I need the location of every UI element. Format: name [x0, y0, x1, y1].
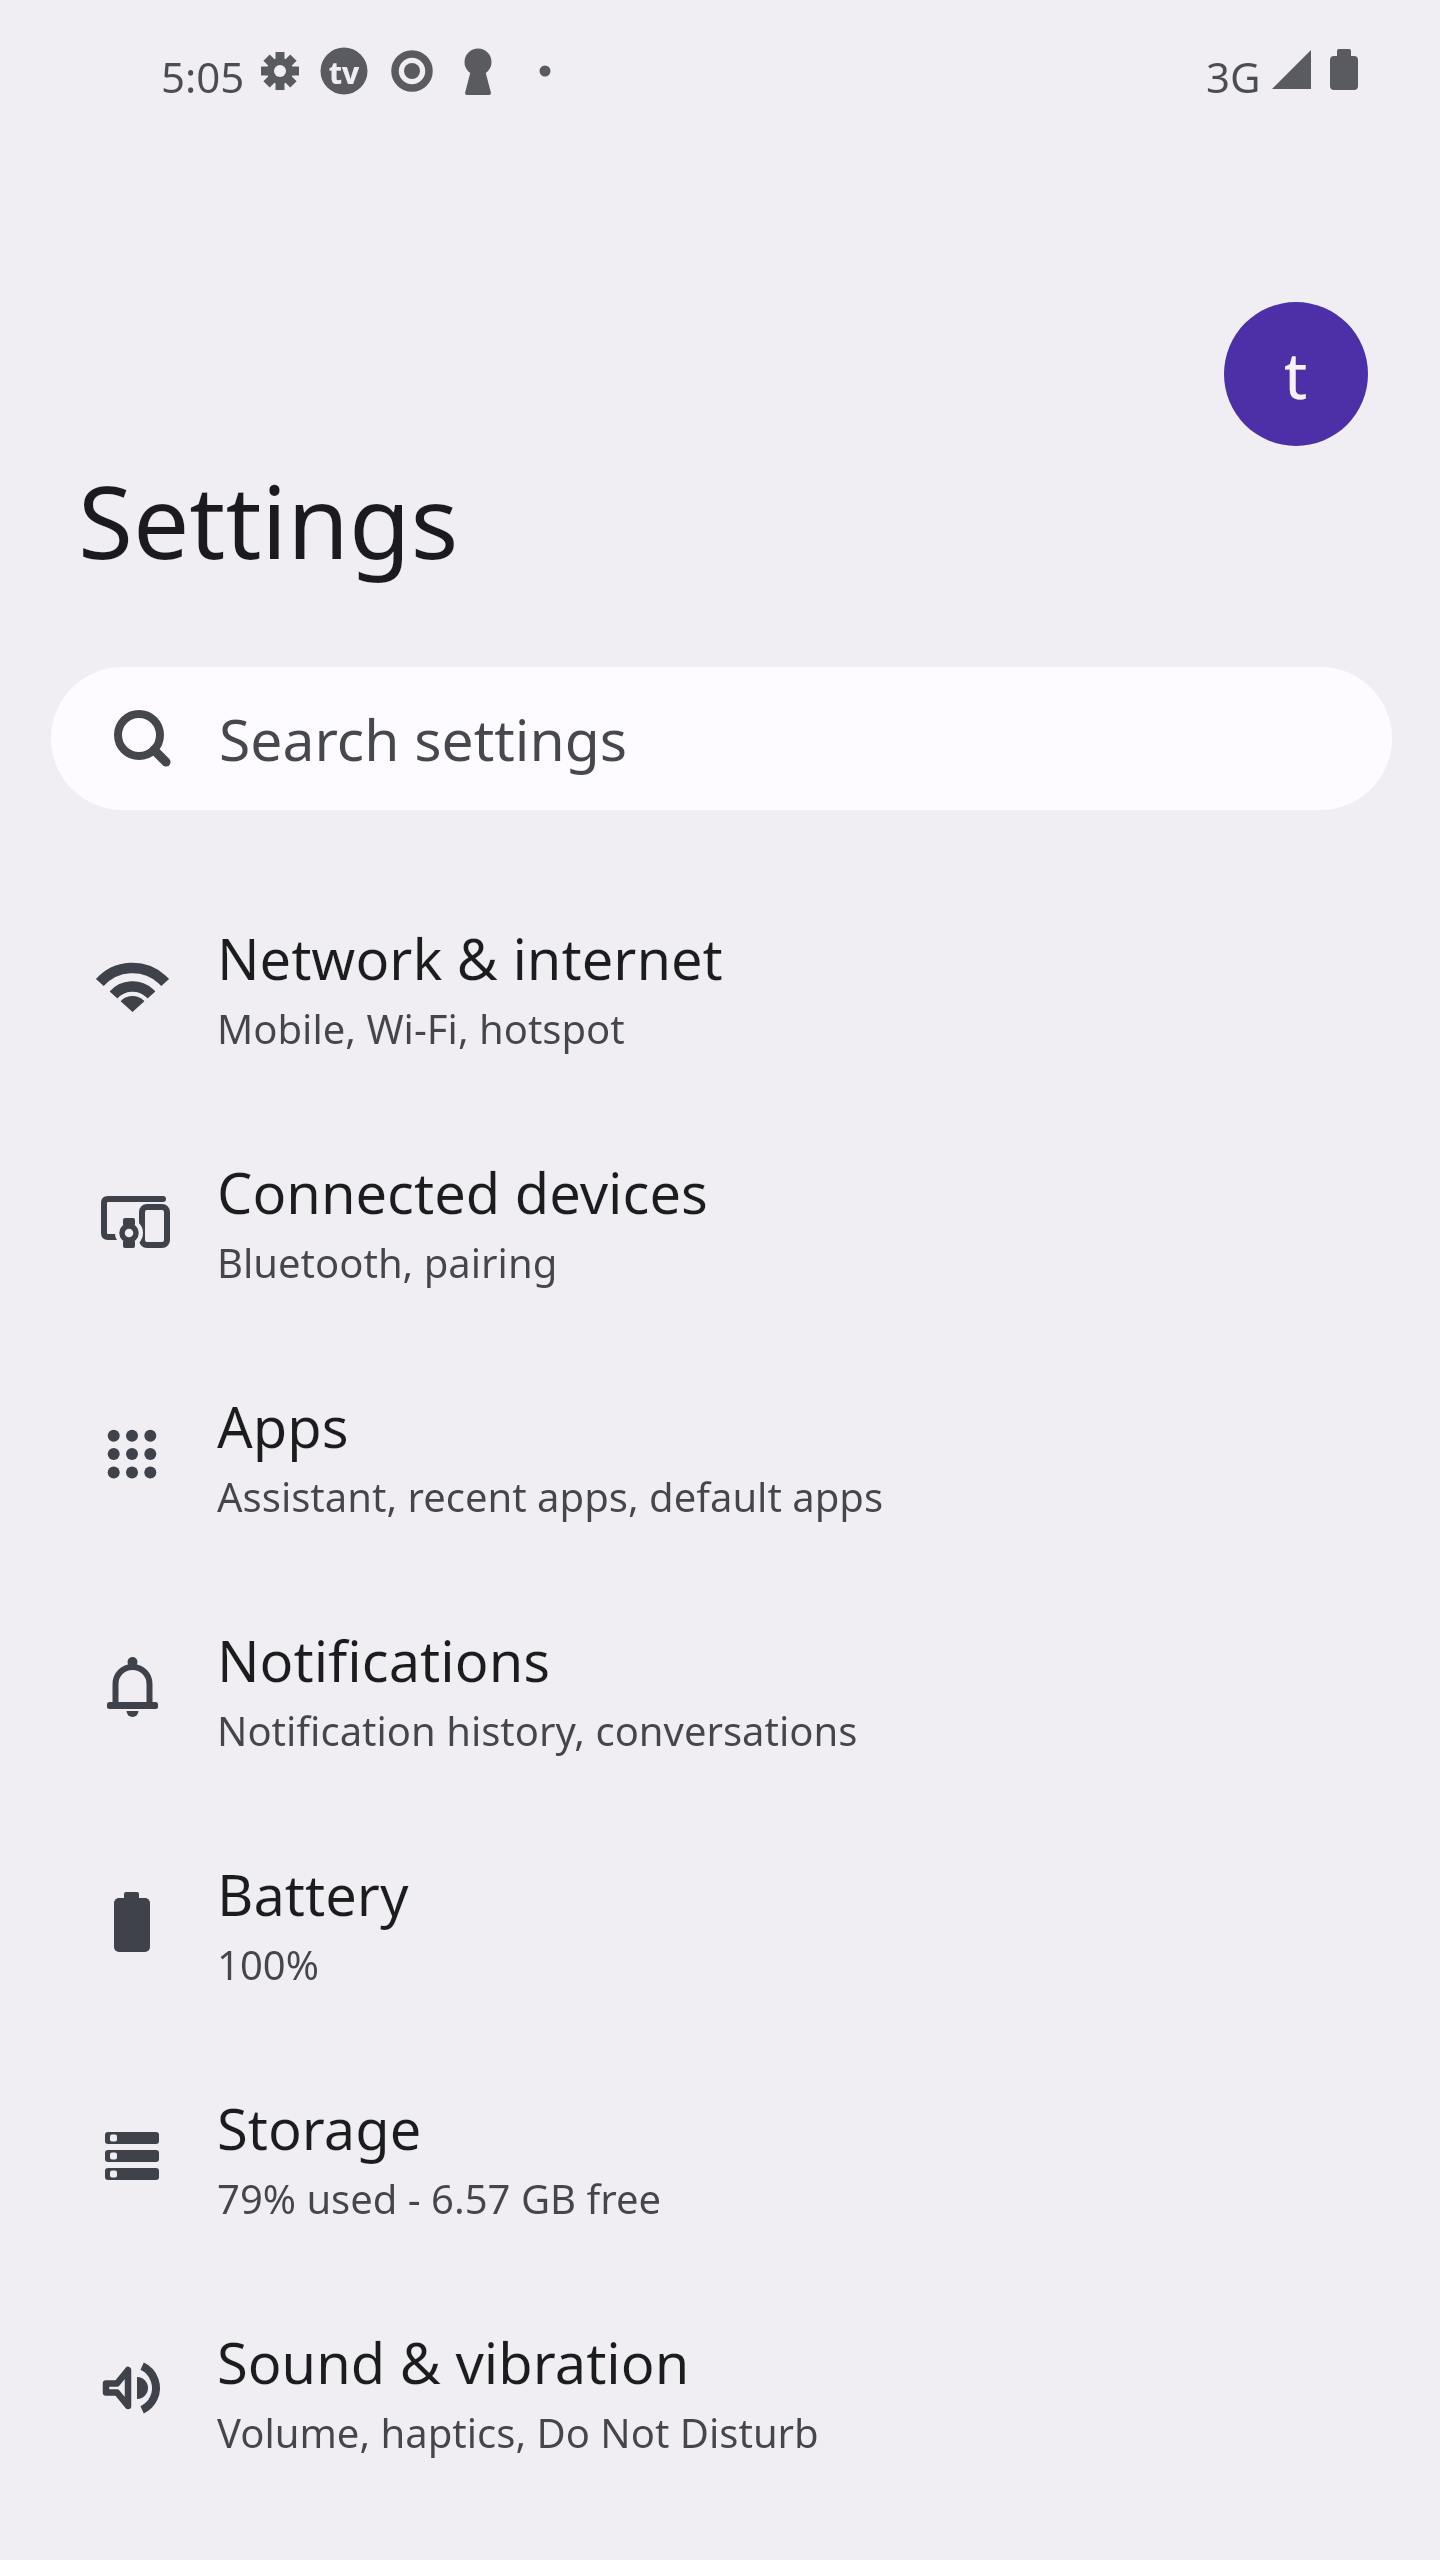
staticText: Notification history, conversations [217, 1703, 858, 1757]
button[interactable]: Connected devices [0, 1104, 1440, 1338]
button[interactable]: t [1224, 302, 1368, 446]
staticText: Settings [78, 452, 459, 588]
staticText: Bluetooth, pairing [217, 1235, 558, 1289]
button[interactable]: Battery [0, 1806, 1440, 2040]
staticText: Battery [217, 1856, 409, 1932]
staticText: Storage [217, 2090, 422, 2166]
staticText: Search settings [219, 700, 628, 778]
button[interactable]: Apps [0, 1338, 1440, 1572]
staticText: tv [329, 52, 360, 93]
staticText: Network & internet [217, 920, 723, 996]
staticText: Connected devices [217, 1154, 708, 1230]
staticText: Assistant, recent apps, default apps [217, 1469, 884, 1523]
staticText: t [1284, 331, 1308, 418]
staticText: Volume, haptics, Do Not Disturb [217, 2405, 819, 2459]
staticText: 100% [217, 1937, 319, 1991]
staticText: Mobile, Wi-Fi, hotspot [217, 1001, 625, 1055]
staticText: Apps [217, 1388, 349, 1464]
button[interactable]: Search settings [51, 667, 1392, 810]
button[interactable]: Storage [0, 2040, 1440, 2274]
staticText: 3G [1206, 48, 1261, 105]
staticText: Notifications [217, 1622, 551, 1698]
staticText: 79% used - 6.57 GB free [217, 2171, 661, 2225]
button[interactable]: Network & internet [0, 870, 1440, 1104]
staticText: Sound & vibration [217, 2324, 690, 2400]
button[interactable]: Sound & vibration [0, 2274, 1440, 2508]
staticText: 5:05 [161, 48, 245, 105]
button[interactable]: Notifications [0, 1572, 1440, 1806]
